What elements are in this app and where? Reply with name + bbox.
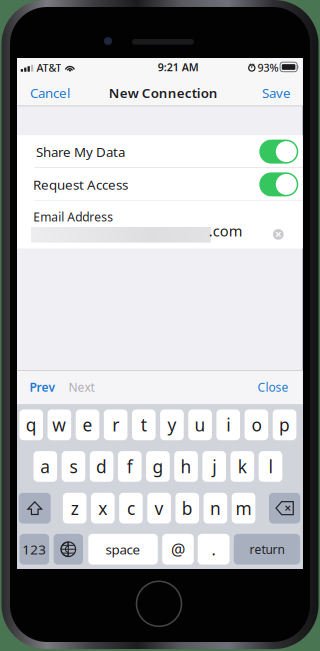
button[interactable]: f	[118, 451, 141, 482]
button[interactable]: t	[132, 409, 156, 440]
staticText: j	[212, 455, 216, 478]
staticText: y	[167, 413, 176, 436]
button[interactable]: a	[33, 451, 57, 482]
button[interactable]: z	[63, 493, 86, 523]
staticText: h	[181, 455, 192, 478]
button[interactable]: u	[188, 409, 212, 440]
staticText: Share My Data	[36, 143, 125, 161]
staticText: r	[112, 413, 119, 436]
staticText: l	[268, 455, 272, 478]
button[interactable]: q	[19, 409, 43, 440]
button[interactable]: Switch keyboard	[54, 534, 83, 565]
button[interactable]: h	[174, 451, 198, 482]
button[interactable]: d	[90, 451, 113, 482]
staticText: Prev	[29, 379, 55, 395]
staticText: Request Access	[33, 176, 128, 193]
button[interactable]: v	[147, 493, 171, 523]
staticText: g	[152, 455, 163, 478]
staticText: space	[105, 540, 140, 558]
staticText: 9:21 AM	[158, 60, 199, 74]
staticText: c	[127, 497, 135, 520]
staticText: Next	[68, 379, 94, 395]
button[interactable]: m	[232, 493, 255, 523]
staticText: t	[141, 413, 147, 436]
staticText: m	[236, 497, 252, 520]
staticText: s	[69, 455, 77, 478]
button[interactable]: Clear text	[273, 229, 284, 240]
button[interactable]: space	[88, 534, 158, 565]
button[interactable]: w	[47, 409, 71, 440]
staticText: v	[155, 497, 164, 520]
staticText: b	[182, 497, 193, 520]
staticText: .	[212, 539, 216, 560]
button[interactable]: .	[198, 534, 229, 565]
staticText: 123	[22, 540, 46, 558]
button[interactable]: p	[273, 409, 296, 440]
staticText: n	[210, 497, 221, 520]
button[interactable]: Save	[263, 87, 290, 99]
button[interactable]: r	[104, 409, 127, 440]
button[interactable]: s	[62, 451, 85, 482]
button[interactable]: g	[146, 451, 170, 482]
button[interactable]: n	[204, 493, 227, 523]
button[interactable]: j	[202, 451, 226, 482]
staticText: Cancel	[30, 84, 70, 102]
button[interactable]: x	[91, 493, 115, 523]
staticText: k	[238, 455, 247, 478]
button[interactable]: Delete	[269, 493, 300, 523]
button[interactable]: i	[216, 409, 240, 440]
button[interactable]: Prev	[30, 381, 55, 393]
staticText: Email Address	[33, 209, 113, 225]
button[interactable]: Shift	[19, 493, 51, 523]
button[interactable]: y	[160, 409, 184, 440]
staticText: w	[52, 413, 66, 436]
staticText: i	[226, 413, 230, 436]
staticText: u	[195, 413, 206, 436]
button[interactable]: o	[245, 409, 268, 440]
staticText: q	[26, 413, 37, 436]
staticText: @	[171, 539, 185, 560]
button[interactable]: 123	[19, 534, 49, 565]
button[interactable]: l	[259, 451, 282, 482]
staticText: New Connection	[109, 84, 218, 102]
button[interactable]: Cancel	[31, 87, 69, 99]
staticText: return	[249, 541, 284, 557]
staticText: p	[279, 413, 290, 436]
button[interactable]: e	[76, 409, 99, 440]
staticText: a	[40, 455, 50, 478]
staticText: Save	[262, 84, 291, 102]
button[interactable]: b	[175, 493, 199, 523]
button[interactable]: c	[119, 493, 143, 523]
button[interactable]: Close	[259, 381, 288, 393]
staticText: x	[98, 497, 107, 520]
staticText: AT&T	[36, 60, 61, 75]
staticText: o	[251, 413, 261, 436]
staticText: d	[96, 455, 107, 478]
staticText: .com	[209, 221, 243, 241]
staticText: 93%	[257, 60, 278, 75]
staticText: e	[82, 413, 92, 436]
button[interactable]: @	[162, 534, 194, 565]
staticText: f	[127, 455, 133, 478]
button[interactable]: Share My Data	[17, 135, 303, 168]
button[interactable]: k	[230, 451, 254, 482]
staticText: Close	[258, 379, 289, 395]
button[interactable]: Request Access	[17, 168, 303, 201]
button[interactable]: Next	[69, 381, 94, 393]
button[interactable]: return	[234, 534, 300, 565]
staticText: z	[71, 497, 79, 520]
